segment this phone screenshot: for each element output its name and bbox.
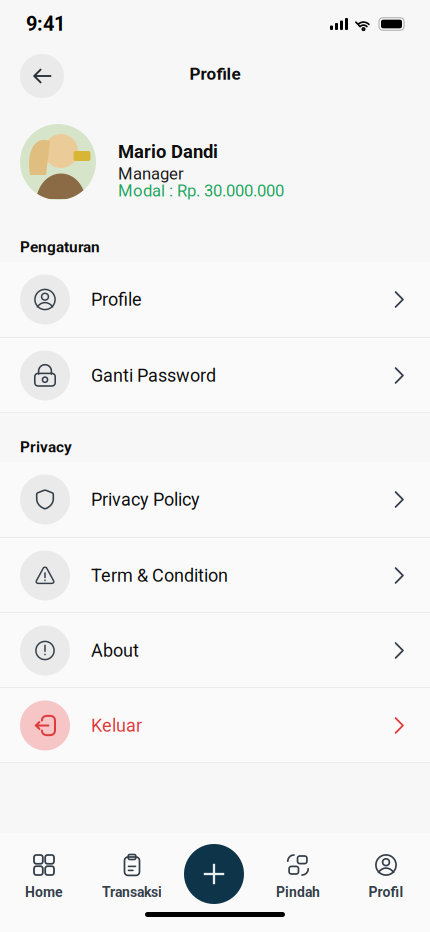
staticText: Modal : Rp. 30.000.000	[118, 181, 284, 200]
button[interactable]: Pindah	[254, 833, 342, 903]
button[interactable]: Add	[184, 844, 244, 904]
staticText: Privacy	[20, 438, 72, 456]
staticText: Privacy Policy	[91, 489, 200, 510]
button[interactable]: About	[0, 613, 430, 688]
button[interactable]: Transaksi	[88, 833, 176, 903]
staticText: Home	[25, 884, 63, 900]
staticText: Manager	[118, 164, 184, 183]
staticText: Keluar	[91, 715, 142, 736]
staticText: Pindah	[276, 884, 320, 900]
staticText: Transaksi	[102, 884, 162, 900]
button[interactable]: Privacy Policy	[0, 462, 430, 537]
staticText: Profile	[189, 64, 240, 84]
staticText: About	[91, 640, 139, 661]
button[interactable]: Home	[0, 833, 88, 903]
button[interactable]: Back	[20, 54, 64, 98]
staticText: Profile	[91, 289, 142, 310]
button[interactable]: Ganti Password	[0, 338, 430, 413]
button[interactable]: Keluar	[0, 688, 430, 763]
button[interactable]: Profile	[0, 262, 430, 337]
button[interactable]: Term & Condition	[0, 538, 430, 613]
button[interactable]: Profil	[342, 833, 430, 903]
staticText: Ganti Password	[91, 365, 216, 386]
staticText: 9:41	[26, 12, 65, 36]
staticText: Mario Dandi	[118, 141, 218, 163]
staticText: Term & Condition	[91, 565, 228, 586]
staticText: Profil	[368, 884, 403, 900]
staticText: Pengaturan	[20, 238, 100, 256]
